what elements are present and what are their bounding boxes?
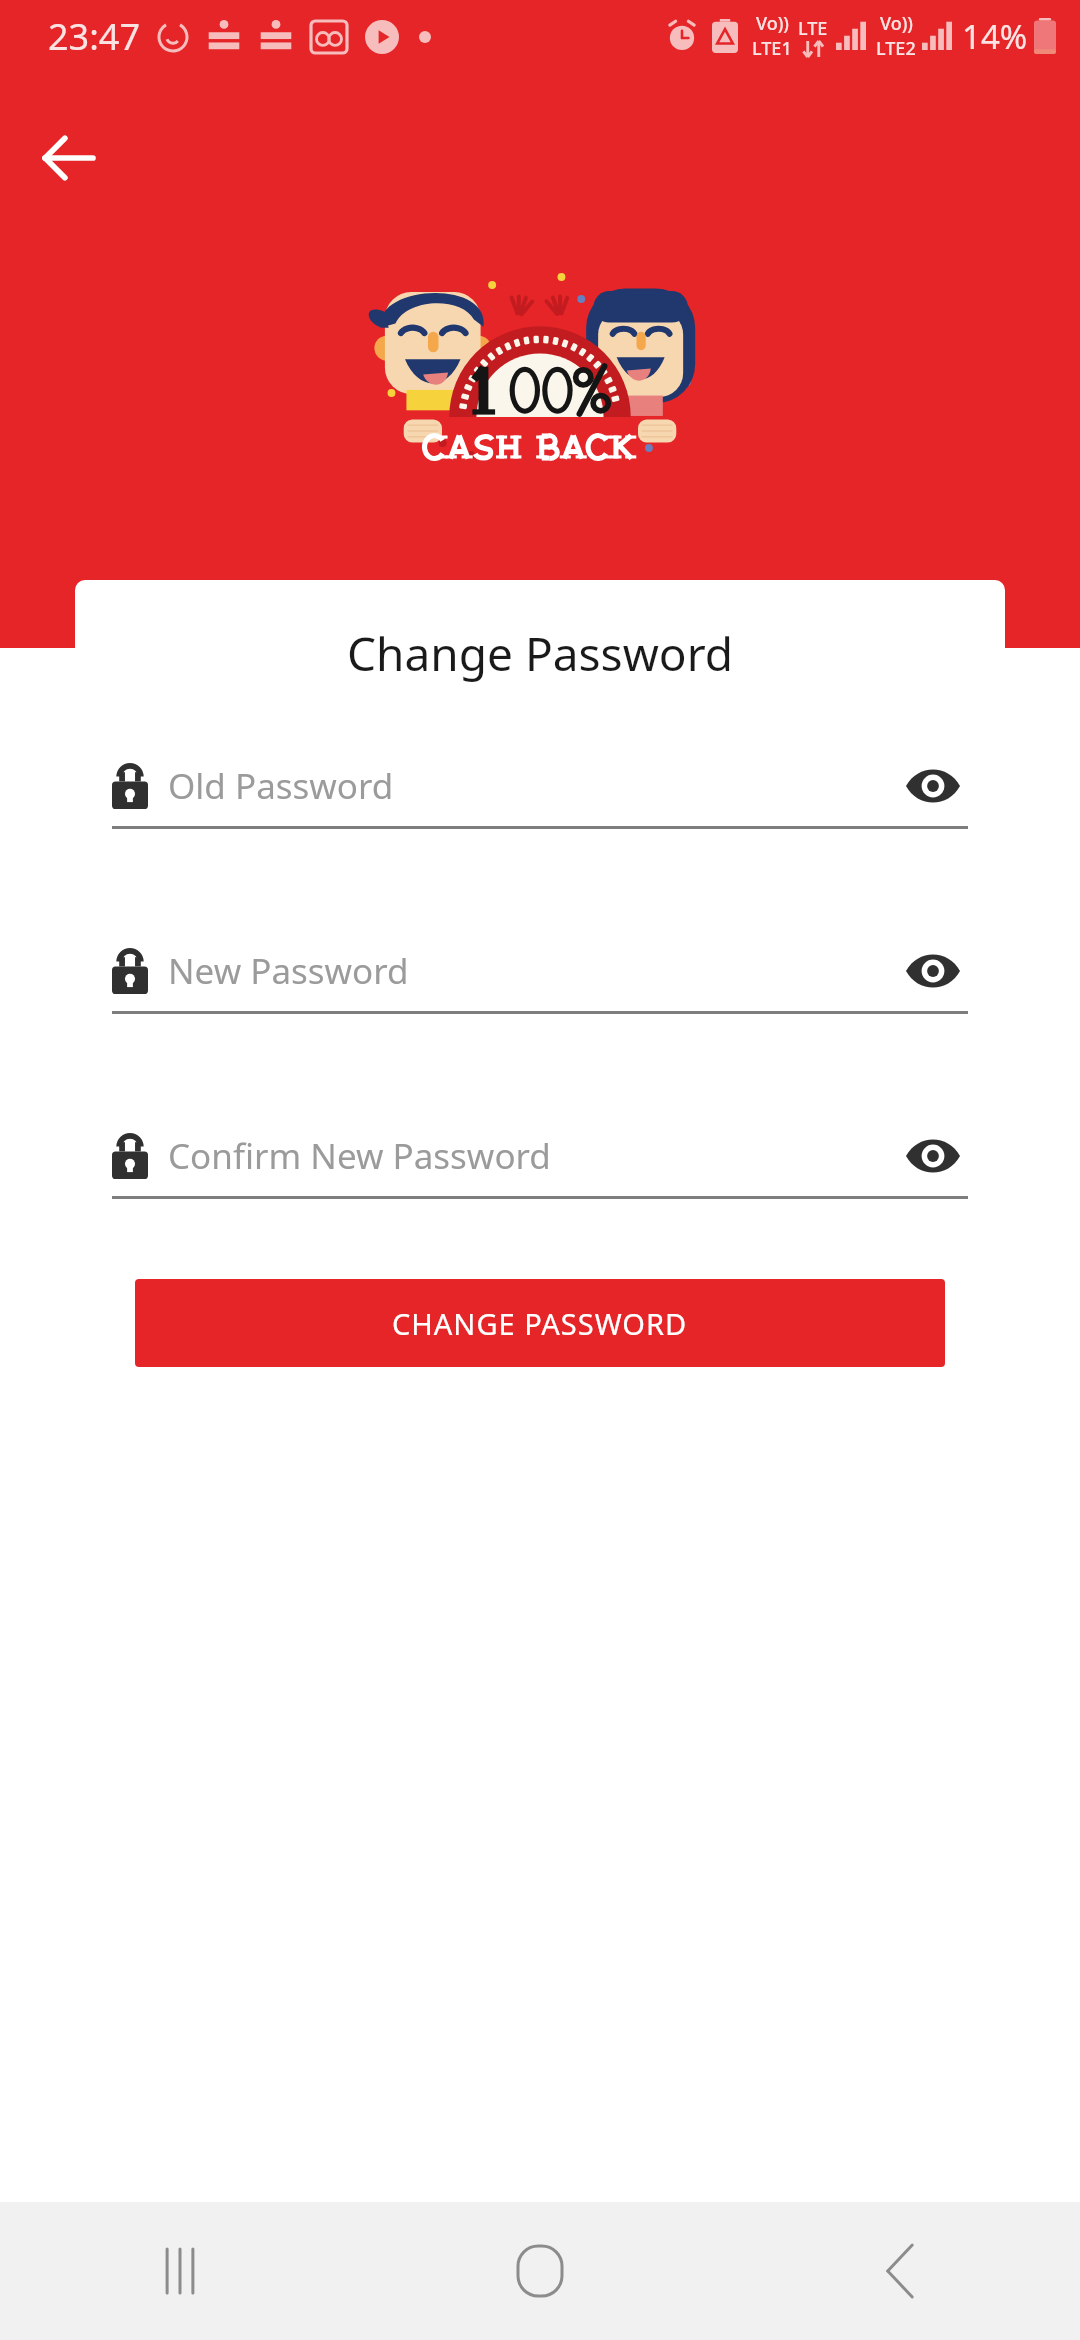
staticText: CHANGE PASSWORD <box>392 1304 688 1343</box>
button[interactable]: Show password <box>898 751 968 821</box>
button[interactable]: New Password <box>112 932 968 1032</box>
button[interactable]: Confirm New Password <box>112 1117 968 1217</box>
button[interactable]: CHANGE PASSWORD <box>135 1279 945 1367</box>
staticText: Old Password <box>168 762 898 810</box>
button[interactable]: Back <box>20 110 116 206</box>
staticText: LTE2 <box>876 36 916 61</box>
button[interactable]: Recents <box>0 2202 360 2340</box>
staticText: Vo)) <box>756 11 789 36</box>
staticText: Change Password <box>75 622 1005 685</box>
button[interactable]: Show password <box>898 1121 968 1191</box>
staticText: New Password <box>168 947 898 995</box>
button[interactable]: Back <box>720 2202 1080 2340</box>
button[interactable]: Home <box>360 2202 720 2340</box>
staticText: LTE1 <box>752 36 792 61</box>
staticText: 23:47 <box>48 12 141 61</box>
staticText: Confirm New Password <box>168 1132 898 1180</box>
staticText: Vo)) <box>880 11 913 36</box>
button[interactable]: Show password <box>898 936 968 1006</box>
button[interactable]: Old Password <box>112 747 968 847</box>
staticText: 14% <box>962 14 1028 59</box>
staticText: LTE <box>798 16 828 41</box>
